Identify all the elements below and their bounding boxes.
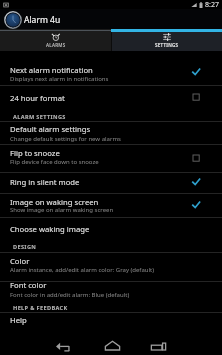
staticText: Default alarm settings	[10, 124, 91, 134]
button[interactable]: Back	[52, 330, 74, 355]
button[interactable]	[0, 122, 222, 144]
staticText: Change default settings for new alarms	[10, 135, 121, 143]
button[interactable]	[0, 145, 222, 172]
button[interactable]	[0, 173, 222, 193]
staticText: Help	[10, 315, 27, 325]
button[interactable]	[0, 53, 222, 85]
staticText: Font color in add/edit alarm: Blue (defa…	[10, 291, 130, 299]
staticText: Alarm 4u	[24, 14, 61, 26]
button[interactable]: SETTINGS	[111, 29, 222, 51]
staticText: Show image on alarm waking screen	[10, 206, 114, 214]
staticText: Font color	[10, 280, 47, 290]
button[interactable]: ALARMS	[0, 29, 111, 51]
button[interactable]	[0, 194, 222, 217]
staticText: Next alarm notification	[10, 65, 93, 75]
button[interactable]: Home	[101, 330, 123, 355]
button[interactable]: Recent apps	[147, 330, 169, 355]
staticText: ALARM SETTINGS	[13, 113, 66, 121]
button[interactable]	[0, 86, 222, 108]
staticText: HELP & FEEDBACK	[13, 304, 68, 312]
staticText: Ring in silent mode	[10, 177, 80, 187]
staticText: Image on waking screen	[10, 197, 99, 207]
staticText: Color	[10, 256, 30, 266]
staticText: SETTINGS	[155, 42, 179, 48]
staticText: 24 hour format	[10, 93, 65, 103]
staticText: ALARMS	[46, 42, 66, 48]
staticText: 8:27	[205, 0, 219, 9]
staticText: Displays next alarm in notifications	[10, 75, 109, 83]
button[interactable]	[0, 253, 222, 281]
staticText: Flip to snooze	[10, 148, 60, 158]
staticText: Flip device face down to snooze	[10, 158, 99, 166]
button[interactable]	[0, 218, 222, 238]
staticText: Alarm instance, add/edit alarm color: Gr…	[10, 266, 155, 274]
button[interactable]: Alarm 4u	[4, 11, 22, 29]
staticText: DESIGN	[13, 243, 37, 251]
button[interactable]	[0, 282, 222, 304]
staticText: Choose waking image	[10, 224, 90, 234]
button[interactable]	[0, 313, 222, 332]
